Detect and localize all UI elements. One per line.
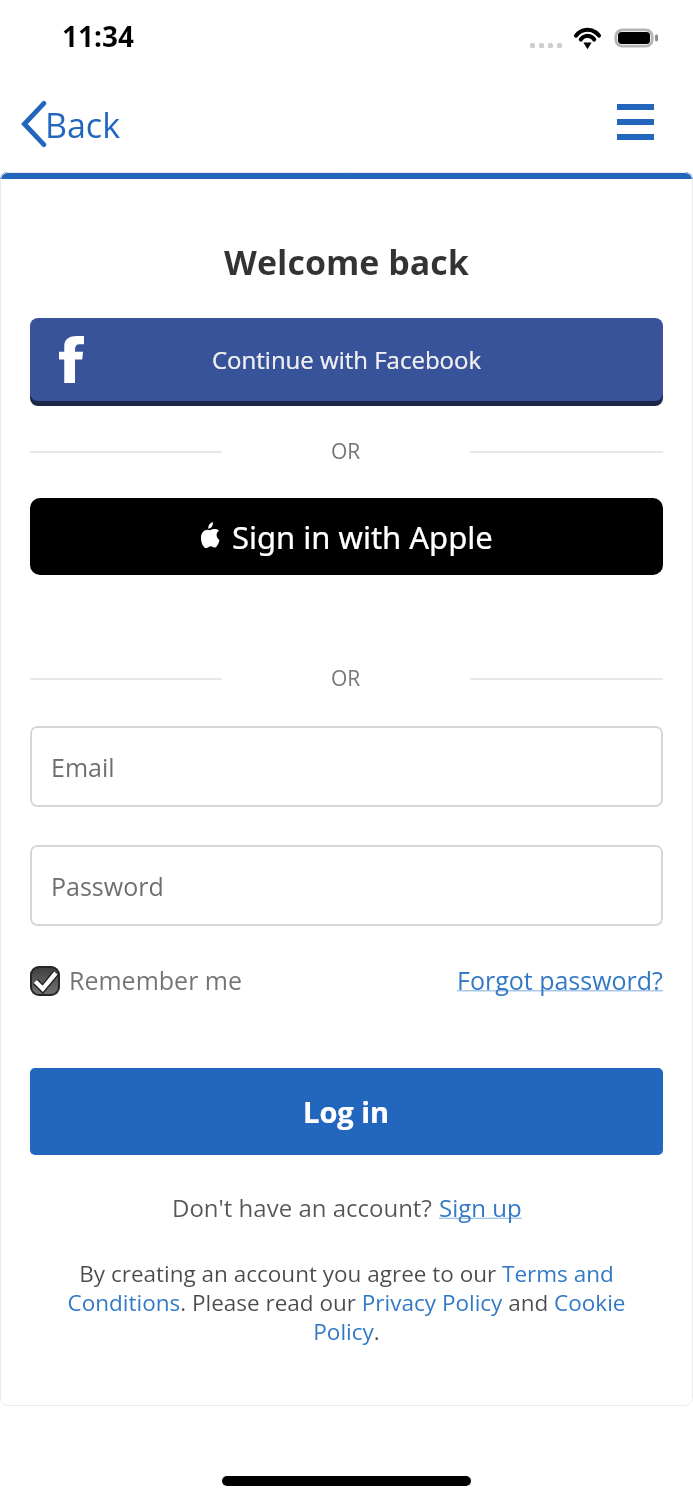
button[interactable]: Remember me [30,960,243,994]
button[interactable]: Log in [30,1068,663,1155]
button[interactable]: Email [30,726,663,807]
button[interactable]: Continue with Facebook [30,318,663,401]
staticText: Welcome back [30,239,663,285]
staticText: Email [51,750,115,784]
button[interactable]: Sign in with Apple [30,498,663,575]
staticText: Sign in with Apple [232,516,493,558]
staticText: Password [51,869,164,903]
staticText: 11:34 [62,17,134,55]
staticText: Continue with Facebook [212,343,482,376]
staticText: Don't have an account? [172,1191,439,1224]
staticText: Remember me [69,963,243,997]
staticText: OR [331,664,361,693]
staticText: Back [45,102,121,148]
staticText: Log in [303,1092,390,1131]
button[interactable]: Password [30,845,663,926]
staticText: OR [331,437,361,466]
button[interactable]: Sign up [439,1191,522,1224]
button[interactable]: Back [13,96,131,156]
button[interactable]: Menu [609,96,662,148]
staticText: By creating an account you agree to our … [32,1258,661,1346]
button[interactable]: Forgot password? [457,963,663,997]
